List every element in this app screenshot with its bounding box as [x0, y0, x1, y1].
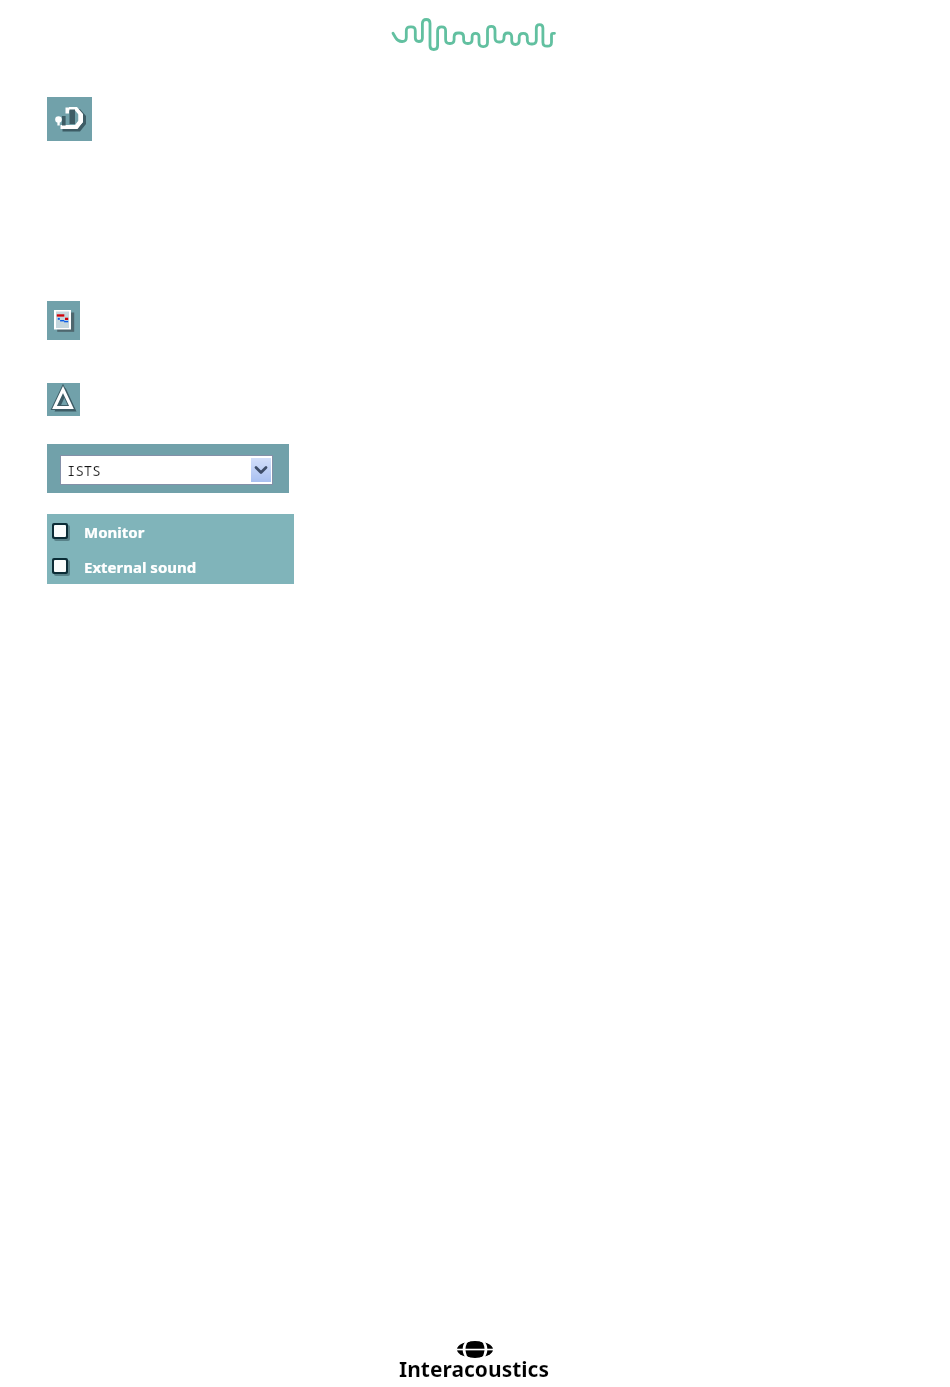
button[interactable]: ISTS	[61, 456, 272, 484]
button[interactable]: Monitor	[47, 519, 294, 545]
button[interactable]: Report	[47, 301, 80, 340]
button[interactable]: External sound	[47, 554, 294, 580]
button[interactable]: Delta	[47, 383, 80, 416]
button[interactable]: Open list	[251, 458, 271, 482]
button[interactable]: Talk forward	[47, 97, 92, 141]
staticText: External sound	[84, 557, 197, 577]
staticText: ISTS	[67, 461, 101, 480]
staticText: Monitor	[84, 522, 145, 542]
staticText: Interacoustics	[399, 1355, 549, 1384]
